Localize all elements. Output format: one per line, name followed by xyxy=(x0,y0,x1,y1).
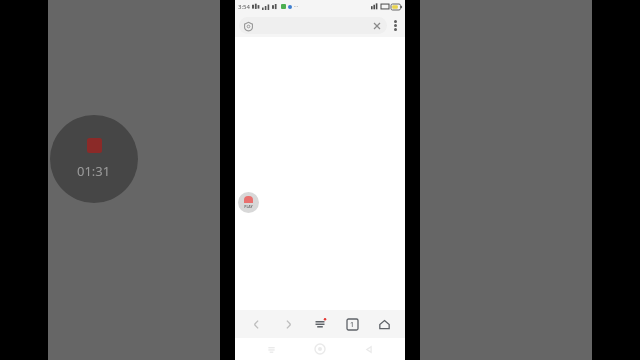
button[interactable]: Home xyxy=(307,339,333,359)
staticText: 3:54 xyxy=(238,3,250,11)
button[interactable]: Clear xyxy=(370,19,384,33)
button[interactable]: Tabs xyxy=(341,312,363,336)
button[interactable]: More options xyxy=(387,14,403,36)
button[interactable]: Floating action bubble xyxy=(238,192,259,213)
staticText: PLAY xyxy=(244,204,253,209)
other: Site security xyxy=(242,20,254,32)
staticText: ··· xyxy=(294,3,299,10)
button[interactable]: Stop screen recording xyxy=(50,115,138,203)
button[interactable]: Menu xyxy=(309,312,331,336)
button[interactable]: Home xyxy=(373,312,395,336)
button[interactable]: Recent apps xyxy=(258,339,284,359)
button[interactable]: Back xyxy=(356,339,382,359)
staticText: 1 xyxy=(350,320,355,330)
button[interactable]: Back xyxy=(245,312,267,336)
button[interactable]: Site security xyxy=(239,17,387,34)
button[interactable]: Forward xyxy=(277,312,299,336)
staticText: 01:31 xyxy=(77,162,111,180)
